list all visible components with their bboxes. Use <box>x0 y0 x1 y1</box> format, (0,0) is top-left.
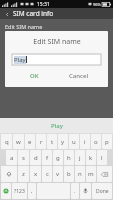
button[interactable]: e <box>25 134 35 149</box>
button[interactable]: , <box>28 183 36 199</box>
staticText: b <box>67 170 71 178</box>
button[interactable]: k <box>86 150 96 165</box>
staticText: Play <box>14 56 26 64</box>
button[interactable]: x <box>30 166 41 182</box>
button[interactable]: Shift <box>1 166 17 182</box>
staticText: w <box>16 138 21 146</box>
button[interactable]: h <box>64 150 74 165</box>
staticText: j <box>79 154 81 162</box>
staticText: z <box>22 170 25 178</box>
staticText: o <box>94 138 98 146</box>
button[interactable]: y <box>58 134 68 149</box>
button[interactable]: m <box>86 166 96 182</box>
staticText: Cancel <box>69 72 89 80</box>
button[interactable]: n <box>75 166 85 182</box>
staticText: y <box>61 138 65 146</box>
staticText: ?123 <box>14 188 25 195</box>
button[interactable]: v <box>53 166 63 182</box>
staticText: OK <box>30 72 39 80</box>
button[interactable]: OK <box>12 72 56 80</box>
staticText: f <box>46 154 49 162</box>
button[interactable]: c <box>42 166 52 182</box>
staticText: v <box>56 170 60 178</box>
button[interactable]: Play <box>12 54 101 65</box>
staticText: s <box>22 154 25 162</box>
button[interactable]: ?123 <box>12 183 27 199</box>
staticText: . <box>74 188 76 195</box>
staticText: SIM card info <box>13 9 54 18</box>
staticText: k <box>89 154 93 162</box>
button[interactable]: Back <box>3 10 11 18</box>
button[interactable]: q <box>1 134 12 149</box>
button[interactable]: Cancel <box>56 72 101 80</box>
button[interactable]: o <box>91 134 101 149</box>
staticText: d <box>34 154 38 162</box>
button[interactable]: z <box>18 166 29 182</box>
staticText: h <box>67 154 71 162</box>
button[interactable]: l <box>97 150 107 165</box>
button[interactable]: d <box>30 150 41 165</box>
button[interactable]: p <box>102 134 112 149</box>
staticText: , <box>31 188 33 195</box>
staticText: u <box>72 138 76 146</box>
button[interactable]: Done <box>92 183 112 199</box>
staticText: e <box>28 138 32 146</box>
staticText: a <box>10 154 14 162</box>
staticText: q <box>5 138 9 146</box>
button[interactable]: w <box>13 134 24 149</box>
button[interactable]: j <box>75 150 85 165</box>
staticText: Edit SIM name <box>33 37 81 47</box>
button[interactable]: . <box>71 183 79 199</box>
staticText: t <box>51 138 54 146</box>
button[interactable]: i <box>80 134 90 149</box>
button[interactable]: Back <box>0 8 113 19</box>
staticText: l <box>101 154 103 162</box>
button[interactable]: g <box>53 150 63 165</box>
button[interactable]: u <box>69 134 79 149</box>
button[interactable]: t <box>47 134 57 149</box>
button[interactable]: a <box>6 150 17 165</box>
button[interactable]: Backspace <box>97 166 112 182</box>
staticText: 15:31 <box>37 1 50 8</box>
staticText: r <box>40 138 43 146</box>
staticText: g <box>56 154 60 162</box>
staticText: x <box>34 170 38 178</box>
staticText: p <box>105 138 109 146</box>
staticText: 96% <box>93 2 101 7</box>
button[interactable]: s <box>18 150 29 165</box>
staticText: Done <box>96 188 109 195</box>
button[interactable]: f <box>42 150 52 165</box>
staticText: n <box>78 170 82 178</box>
staticText: c <box>46 170 49 178</box>
button[interactable]: Voice input <box>80 183 91 199</box>
button[interactable]: Play <box>45 120 69 132</box>
staticText: Play <box>51 122 63 130</box>
button[interactable]: Language <box>1 183 11 199</box>
staticText: i <box>84 138 86 146</box>
button[interactable]: b <box>64 166 74 182</box>
button[interactable]: r <box>36 134 46 149</box>
staticText: m <box>88 170 94 178</box>
staticText: Edit SIM name <box>5 23 43 30</box>
